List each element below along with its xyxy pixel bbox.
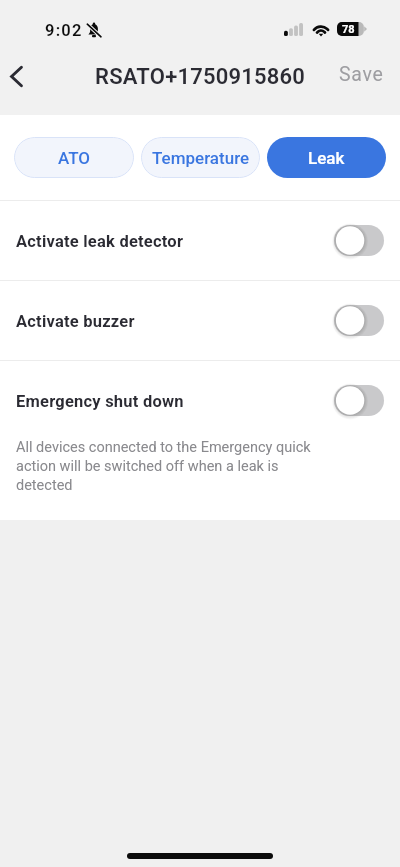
staticText: RSATO+1750915860 xyxy=(95,64,306,90)
button[interactable]: Activate leak detector xyxy=(0,201,400,280)
button[interactable]: Temperature xyxy=(141,137,260,178)
staticText: 9:02 xyxy=(45,21,83,40)
button[interactable]: Save xyxy=(339,63,384,86)
button[interactable]: ATO xyxy=(14,137,134,178)
staticText: All devices connected to the Emergency q… xyxy=(16,439,322,494)
staticText: Emergency shut down xyxy=(16,392,334,411)
staticText: Temperature xyxy=(152,148,250,168)
button[interactable]: Emergency shut down xyxy=(0,361,400,440)
staticText: ATO xyxy=(58,148,91,168)
button[interactable]: Toggle xyxy=(334,385,384,416)
staticText: Activate leak detector xyxy=(16,232,334,251)
button[interactable]: Leak xyxy=(267,137,386,178)
staticText: Save xyxy=(339,63,384,86)
button[interactable]: Activate buzzer xyxy=(0,281,400,360)
staticText: 78 xyxy=(342,23,355,36)
staticText: Leak xyxy=(308,148,345,168)
button[interactable]: Toggle xyxy=(334,225,384,256)
staticText: Activate buzzer xyxy=(16,312,334,331)
button[interactable]: Toggle xyxy=(334,305,384,336)
button[interactable]: Back xyxy=(0,58,34,94)
